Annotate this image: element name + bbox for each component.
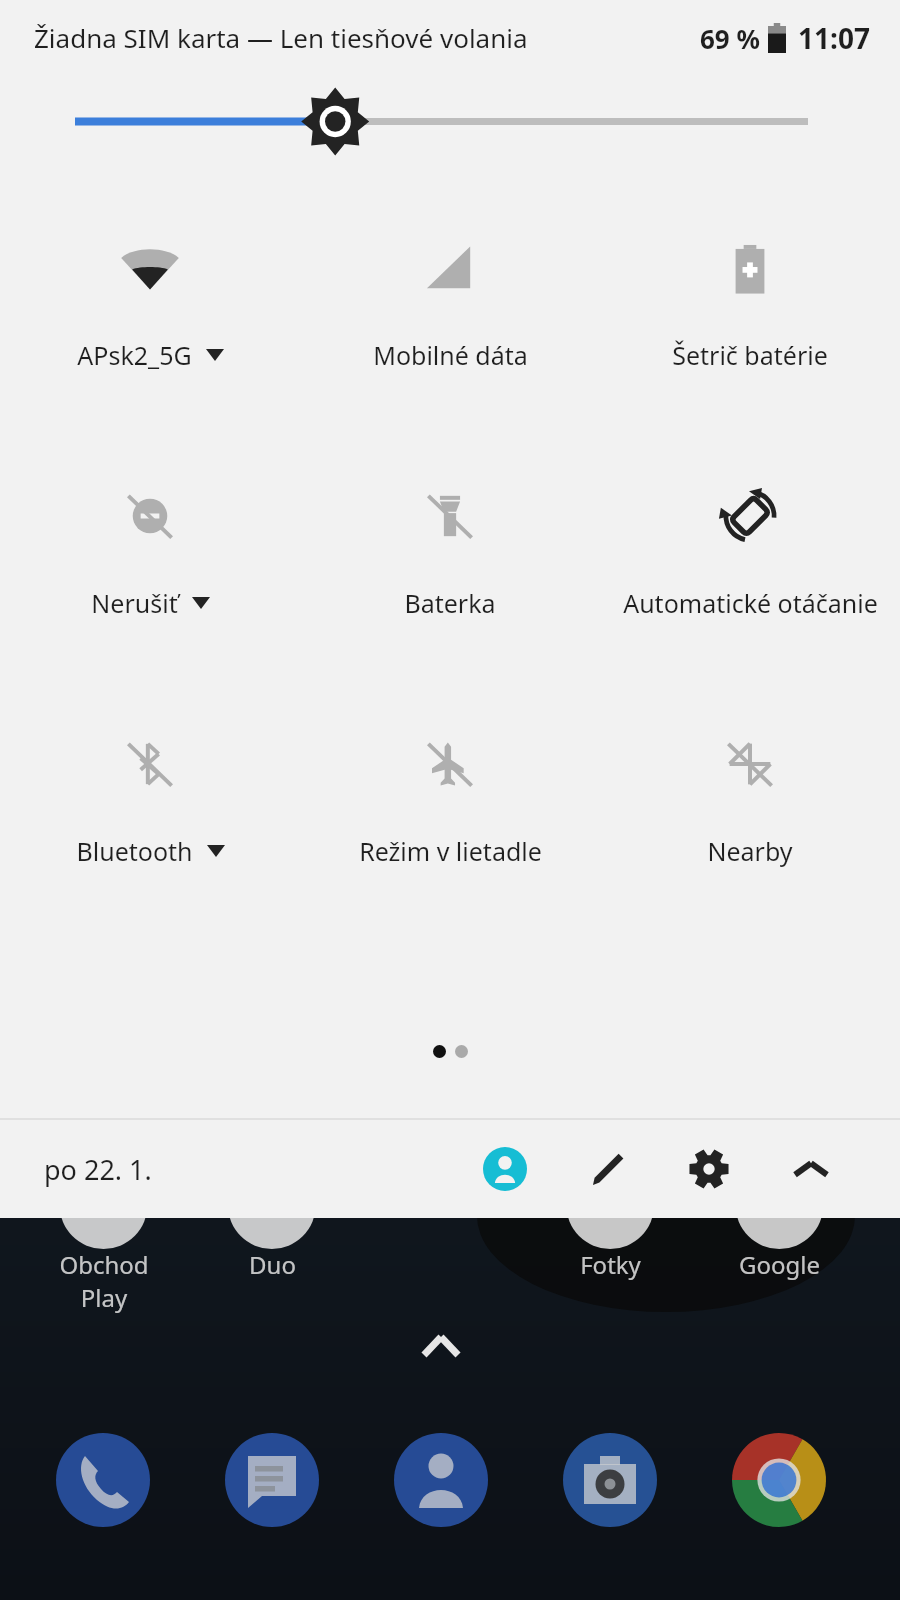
button[interactable]: APsk2_5G [0,228,300,376]
button[interactable]: Collapse [780,1138,842,1200]
staticText: Fotky [580,1248,641,1281]
staticText: Šetrič batérie [672,338,828,372]
button[interactable]: Contacts [389,1428,493,1532]
button[interactable] [0,0,900,1600]
button[interactable]: Bluetooth [0,724,300,872]
staticText: 11:07 [798,19,870,57]
staticText: Duo [249,1248,296,1281]
staticText: po 22. 1. [44,1151,152,1188]
button[interactable]: Settings [678,1138,740,1200]
staticText: Režim v lietadle [359,834,542,868]
button[interactable]: Edit [578,1138,640,1200]
staticText: Nerušiť [91,586,178,620]
button[interactable]: Brightness [0,75,900,150]
button[interactable]: Messages [220,1428,324,1532]
staticText: Bluetooth [76,834,193,868]
staticText: Automatické otáčanie [623,586,878,620]
button[interactable]: Baterka [300,476,600,624]
button[interactable]: Režim v lietadle [300,724,600,872]
staticText: Google [739,1248,820,1281]
button[interactable]: Mobilné dáta [300,228,600,376]
button[interactable]: Nerušiť [0,476,300,624]
button[interactable]: Automatické otáčanie [600,476,900,624]
staticText: APsk2_5G [77,338,192,372]
button[interactable]: Chrome [727,1428,831,1532]
button[interactable] [0,0,900,1600]
button[interactable]: User [474,1138,536,1200]
button[interactable]: Nearby [600,724,900,872]
staticText: Baterka [404,586,496,620]
staticText: Mobilné dáta [373,338,528,372]
staticText: Obchod Play [34,1248,174,1314]
button[interactable] [0,0,900,1600]
button[interactable]: Phone [51,1428,155,1532]
staticText: Žiadna SIM karta — Len tiesňové volania [34,20,528,55]
button[interactable]: Šetrič batérie [600,228,900,376]
button[interactable] [0,0,900,1600]
staticText: 69 % [700,21,760,56]
button[interactable]: Camera [558,1428,662,1532]
staticText: Nearby [707,834,793,868]
